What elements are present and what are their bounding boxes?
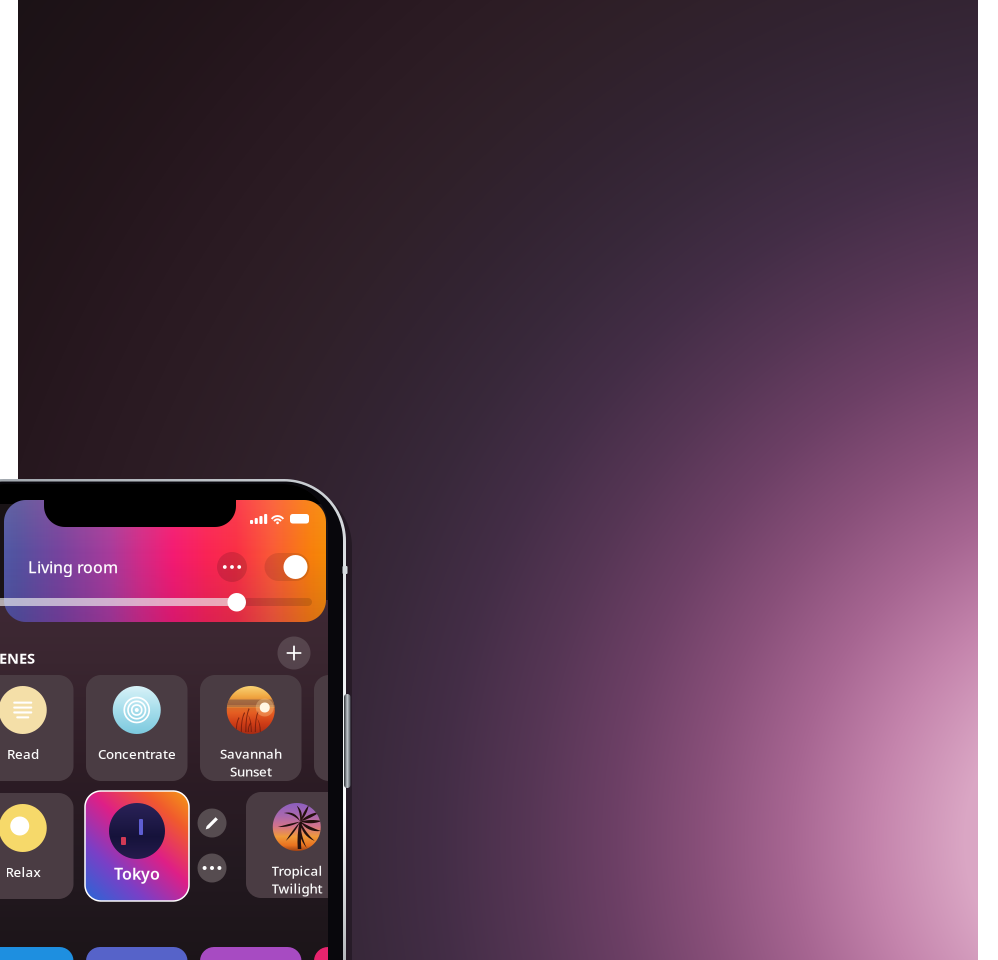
button[interactable]: Relax (0, 793, 73, 899)
staticText: Relax (5, 863, 40, 881)
button[interactable]: Tropical Twilight (246, 792, 347, 898)
button[interactable]: Edit scene (197, 808, 226, 837)
staticText: Living room (28, 556, 118, 578)
staticText: Tropical Twilight (271, 862, 322, 897)
staticText: Concentrate (98, 745, 176, 763)
button[interactable]: Concentrate (86, 675, 187, 781)
button[interactable]: Lights on (264, 553, 309, 581)
button[interactable]: Scene options (197, 853, 226, 882)
button[interactable]: Tokyo (85, 791, 189, 901)
button[interactable]: Add scene (277, 636, 310, 669)
staticText: Savannah Sunset (220, 745, 282, 780)
button[interactable] (314, 675, 415, 781)
button[interactable]: Read (0, 675, 73, 781)
button[interactable]: More options (217, 552, 247, 582)
button[interactable]: Savannah Sunset (200, 675, 301, 781)
staticText: Read (7, 745, 39, 763)
staticText: SCENES (0, 648, 35, 668)
staticText: Tokyo (114, 863, 160, 884)
